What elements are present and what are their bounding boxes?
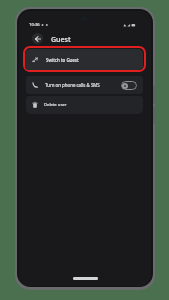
staticText: Delete user: [44, 102, 67, 108]
staticText: Guest: [51, 35, 71, 45]
staticText: Switch to Guest: [46, 57, 79, 63]
button[interactable]: Delete user: [26, 96, 143, 114]
button[interactable]: [121, 81, 137, 90]
button[interactable]: Switch to Guest: [25, 49, 143, 70]
button[interactable]: [32, 33, 43, 44]
staticText: 10:36: [29, 22, 40, 28]
button[interactable]: Turn on phone calls & SMS: [26, 76, 143, 94]
staticText: Turn on phone calls & SMS: [45, 82, 121, 88]
